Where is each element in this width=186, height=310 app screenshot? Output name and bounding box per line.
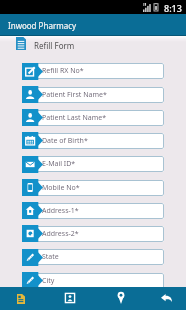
staticText: Inwood Pharmacy (8, 20, 77, 31)
staticText: Refill Form (34, 40, 75, 51)
button[interactable]: Refill RX No* (22, 63, 164, 79)
staticText: E-Mail ID* (42, 159, 76, 169)
staticText: State (42, 252, 59, 262)
button[interactable]: Date of Birth* (22, 133, 164, 149)
button[interactable]: State (22, 249, 164, 265)
button[interactable]: Forms (0, 287, 47, 310)
button[interactable]: Address-1* (22, 203, 164, 219)
button[interactable]: Back (140, 287, 186, 310)
staticText: 8:13 (164, 2, 182, 14)
staticText: Patient First Name* (42, 90, 107, 100)
button[interactable]: Mobile No* (22, 180, 164, 196)
staticText: Patient Last Name* (42, 113, 107, 123)
staticText: Refill RX No* (42, 66, 84, 76)
staticText: Mobile No* (42, 183, 80, 193)
staticText: Address-2* (42, 229, 79, 239)
button[interactable]: E-Mail ID* (22, 156, 164, 172)
button[interactable]: Address-2* (22, 226, 164, 242)
staticText: City (42, 276, 55, 286)
button[interactable]: Patient card (47, 287, 94, 310)
button[interactable]: Inwood Pharmacy (0, 14, 186, 36)
button[interactable]: Patient First Name* (22, 87, 164, 103)
staticText: Address-1* (42, 206, 79, 216)
button[interactable]: Store locator (93, 287, 140, 310)
button[interactable]: City (22, 273, 164, 289)
button[interactable]: Patient Last Name* (22, 110, 164, 126)
staticText: Date of Birth* (42, 136, 88, 146)
